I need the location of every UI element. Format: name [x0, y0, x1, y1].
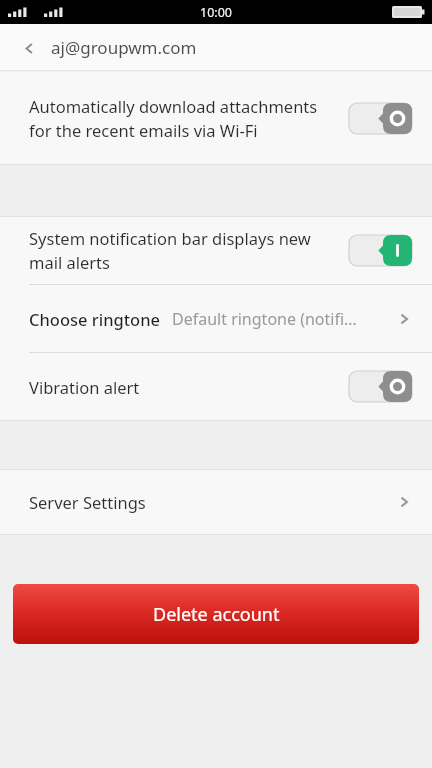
staticText: aj@groupwm.com — [51, 36, 197, 59]
button[interactable]: Toggle on — [349, 235, 412, 266]
button[interactable]: Delete account — [13, 584, 419, 644]
button[interactable]: Server Settings — [0, 470, 432, 534]
button[interactable]: Back — [12, 31, 46, 65]
staticText: System notification bar displays new mai… — [29, 227, 335, 274]
staticText: 10:00 — [200, 4, 232, 21]
staticText: Delete account — [153, 602, 280, 627]
staticText: Default ringtone (notifi… — [172, 308, 390, 330]
button[interactable]: Toggle off — [349, 371, 412, 402]
staticText: Vibration alert — [29, 376, 349, 398]
button[interactable]: Vibration alert — [0, 353, 432, 420]
button[interactable]: Choose ringtone — [0, 285, 432, 352]
staticText: Choose ringtone — [29, 308, 160, 330]
staticText: Automatically download attachments for t… — [29, 95, 335, 142]
button[interactable]: System notification bar displays new mai… — [0, 217, 432, 284]
button[interactable]: Automatically download attachments for t… — [0, 72, 432, 164]
staticText: Server Settings — [29, 491, 396, 513]
button[interactable]: Toggle off — [349, 103, 412, 134]
